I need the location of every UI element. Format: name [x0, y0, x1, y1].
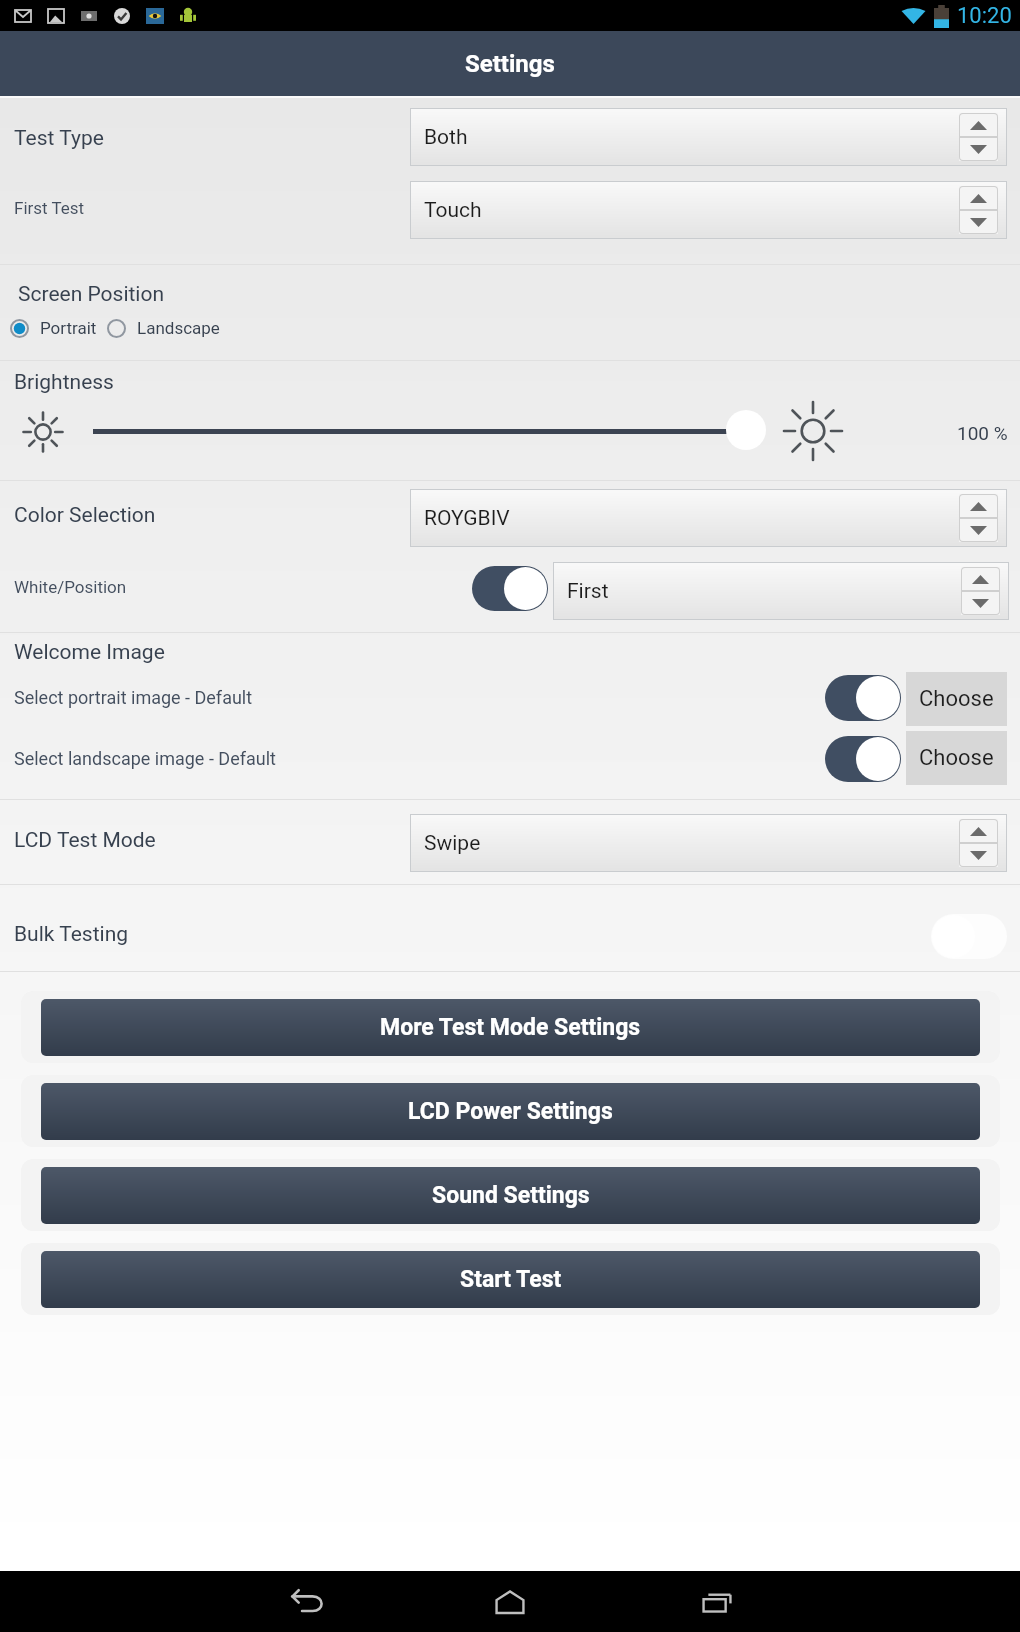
button[interactable]: Increase — [959, 494, 998, 518]
button[interactable]: Toggle on — [825, 736, 901, 782]
button[interactable]: Decrease — [959, 518, 998, 542]
button[interactable]: ROYGBIV — [410, 489, 1007, 547]
staticText: First — [567, 579, 609, 604]
button[interactable]: Toggle on — [472, 566, 548, 611]
staticText: 100 % — [957, 422, 1008, 444]
button[interactable]: More Test Mode Settings — [41, 999, 980, 1056]
staticText: Landscape — [137, 318, 220, 338]
button[interactable]: LCD Power Settings — [41, 1083, 980, 1140]
button[interactable]: Decrease — [959, 210, 998, 234]
button[interactable]: First — [553, 562, 1009, 620]
staticText: Choose — [919, 745, 994, 771]
button[interactable]: Increase — [959, 113, 998, 137]
staticText: ROYGBIV — [424, 506, 510, 531]
button[interactable]: Choose — [906, 672, 1007, 726]
button[interactable]: Back — [267, 1571, 339, 1632]
staticText: Swipe — [424, 831, 481, 856]
button[interactable]: Decrease — [959, 843, 998, 867]
button[interactable]: Increase — [959, 186, 998, 210]
staticText: Bulk Testing — [14, 922, 129, 947]
staticText: First Test — [14, 198, 85, 218]
button[interactable]: Decrease — [959, 137, 998, 161]
staticText: Sound Settings — [432, 1182, 590, 1209]
staticText: Select portrait image - Default — [14, 687, 253, 708]
button[interactable]: Increase — [959, 819, 998, 843]
staticText: Portrait — [40, 318, 97, 338]
button[interactable]: Start Test — [41, 1251, 980, 1308]
staticText: White/Position — [14, 577, 127, 597]
button[interactable]: Touch — [410, 181, 1007, 239]
staticText: Touch — [424, 198, 482, 223]
staticText: LCD Test Mode — [14, 828, 156, 853]
staticText: Test Type — [14, 126, 104, 151]
button[interactable]: Brightness — [726, 410, 766, 450]
button[interactable]: Landscape — [103, 314, 224, 342]
staticText: Brightness — [14, 370, 114, 395]
staticText: Color Selection — [14, 503, 156, 528]
button[interactable]: Portrait — [6, 314, 101, 342]
button[interactable]: Sound Settings — [41, 1167, 980, 1224]
staticText: Select landscape image - Default — [14, 748, 276, 769]
staticText: 10:20 — [957, 3, 1012, 29]
button[interactable]: Increase — [961, 567, 1000, 591]
staticText: Choose — [919, 686, 994, 712]
button[interactable]: Swipe — [410, 814, 1007, 872]
button[interactable]: Recent apps — [681, 1571, 753, 1632]
staticText: Welcome Image — [14, 640, 165, 665]
button[interactable]: Choose — [906, 731, 1007, 785]
staticText: Screen Position — [18, 282, 165, 307]
staticText: LCD Power Settings — [408, 1098, 613, 1125]
button[interactable]: Both — [410, 108, 1007, 166]
staticText: Both — [424, 125, 468, 150]
button[interactable]: Toggle on — [825, 675, 901, 721]
staticText: Start Test — [460, 1266, 562, 1293]
button[interactable]: Decrease — [961, 591, 1000, 615]
button[interactable]: Home — [474, 1571, 546, 1632]
staticText: More Test Mode Settings — [380, 1014, 641, 1041]
staticText: Settings — [465, 50, 555, 78]
